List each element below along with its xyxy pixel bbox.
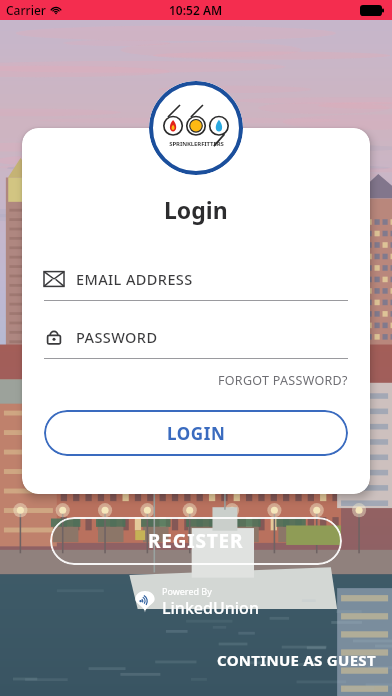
staticText: SPRINKLERFITTERS — [169, 140, 224, 148]
staticText: PASSWORD — [76, 327, 158, 347]
button[interactable]: FORGOT PASSWORD? — [218, 369, 348, 392]
staticText: CONTINUE AS GUEST — [217, 650, 376, 670]
staticText: LinkedUnion — [162, 597, 259, 619]
button[interactable]: CONTINUE AS GUEST — [205, 642, 392, 696]
button[interactable]: EMAIL ADDRESS — [44, 269, 348, 301]
staticText: 10:52 AM — [169, 2, 223, 18]
staticText: LOGIN — [167, 422, 226, 445]
other: Sprinklerfitters 669 logo — [149, 81, 243, 175]
button[interactable]: LOGIN — [44, 410, 348, 456]
button[interactable]: PASSWORD — [44, 327, 348, 359]
staticText: Login — [164, 194, 228, 225]
staticText: Powered By — [162, 585, 212, 597]
staticText: EMAIL ADDRESS — [76, 269, 193, 289]
staticText: REGISTER — [148, 528, 244, 554]
button[interactable]: REGISTER — [50, 517, 342, 565]
staticText: Carrier — [6, 2, 46, 18]
staticText: FORGOT PASSWORD? — [218, 372, 348, 389]
